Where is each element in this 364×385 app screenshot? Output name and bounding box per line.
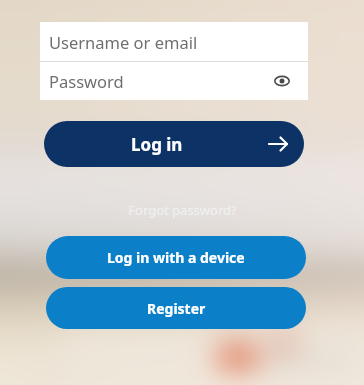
staticText: Forgot password? — [128, 201, 237, 219]
button[interactable]: Show password — [270, 69, 294, 93]
button[interactable]: Password — [40, 62, 308, 100]
button[interactable]: Register — [46, 287, 306, 329]
button[interactable]: Username or email — [40, 22, 308, 61]
staticText: Log in — [131, 133, 183, 156]
button[interactable]: Forgot password? — [102, 199, 262, 221]
staticText: Password — [49, 70, 124, 92]
button[interactable]: Log in — [44, 121, 304, 167]
button[interactable]: Log in with a device — [46, 236, 306, 279]
staticText: Register — [147, 299, 206, 318]
staticText: Log in with a device — [107, 248, 245, 267]
staticText: Username or email — [49, 31, 198, 53]
